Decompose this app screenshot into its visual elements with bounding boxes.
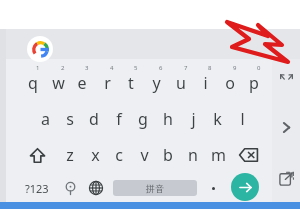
button[interactable]: j	[181, 102, 205, 136]
staticText: f	[116, 108, 122, 130]
staticText: o	[225, 72, 235, 94]
staticText: b	[163, 144, 173, 166]
button[interactable]: b	[156, 140, 180, 170]
staticText: t	[128, 72, 134, 94]
staticText: 2	[61, 64, 65, 72]
button[interactable]: 8	[193, 62, 217, 98]
staticText: n	[188, 144, 198, 166]
staticText: e	[77, 72, 87, 94]
staticText: z	[66, 144, 74, 166]
staticText: ?123	[25, 181, 49, 196]
staticText: 8	[208, 64, 212, 72]
button[interactable]: Resize keyboard	[272, 63, 300, 91]
staticText: 1	[36, 64, 40, 72]
button[interactable]: g	[131, 102, 155, 136]
staticText: r	[104, 72, 111, 94]
staticText: g	[138, 108, 148, 130]
staticText: 3	[85, 64, 89, 72]
staticText: p	[249, 72, 259, 94]
button[interactable]: 2	[46, 62, 70, 98]
staticText: 5	[134, 64, 138, 72]
button[interactable]: Google	[27, 36, 53, 62]
button[interactable]: 拼音	[113, 180, 197, 196]
button[interactable]: Shift	[22, 140, 52, 170]
staticText: k	[213, 108, 222, 130]
button[interactable]: f	[107, 102, 131, 136]
staticText: 6	[159, 64, 163, 72]
button[interactable]: h	[156, 102, 180, 136]
button[interactable]: Backspace	[232, 140, 264, 170]
button[interactable]: z	[58, 140, 82, 170]
button[interactable]: 6	[144, 62, 168, 98]
staticText: 7	[184, 64, 188, 72]
button[interactable]: 4	[95, 62, 119, 98]
staticText: d	[89, 108, 99, 130]
staticText: m	[211, 144, 226, 166]
button[interactable]: s	[58, 102, 82, 136]
button[interactable]: a	[33, 102, 57, 136]
button[interactable]: 3	[70, 62, 94, 98]
staticText: 4	[110, 64, 114, 72]
staticText: s	[66, 108, 74, 130]
button[interactable]: v	[132, 140, 156, 170]
button[interactable]: d	[82, 102, 106, 136]
staticText: a	[41, 108, 50, 130]
button[interactable]: k	[205, 102, 229, 136]
button[interactable]: ?123	[20, 176, 54, 200]
button[interactable]: 5	[119, 62, 143, 98]
staticText: q	[28, 72, 38, 94]
staticText: j	[191, 108, 196, 130]
button[interactable]: m	[206, 140, 230, 170]
staticText: 9	[233, 64, 237, 72]
button[interactable]: l	[230, 102, 254, 136]
button[interactable]: Next	[272, 113, 300, 141]
staticText: i	[203, 72, 208, 94]
staticText: h	[163, 108, 173, 130]
button[interactable]: c	[107, 140, 131, 170]
button[interactable]: n	[181, 140, 205, 170]
button[interactable]: 7	[169, 62, 193, 98]
staticText: w	[52, 72, 65, 94]
staticText: c	[115, 144, 123, 166]
staticText: 拼音	[146, 183, 164, 194]
staticText: x	[91, 144, 100, 166]
button[interactable]: Change language	[84, 176, 108, 200]
button[interactable]: Enter	[231, 173, 259, 201]
staticText: v	[140, 144, 149, 166]
staticText: l	[240, 108, 245, 130]
button[interactable]: 9	[218, 62, 242, 98]
button[interactable]: 1	[21, 62, 45, 98]
button[interactable]: Floating keyboard	[272, 164, 300, 192]
staticText: y	[152, 72, 161, 94]
button[interactable]: 0	[242, 62, 266, 98]
button[interactable]: Emoji	[58, 176, 82, 200]
button[interactable]	[203, 176, 223, 200]
staticText: 0	[257, 64, 261, 72]
button[interactable]: x	[83, 140, 107, 170]
staticText: u	[176, 72, 186, 94]
